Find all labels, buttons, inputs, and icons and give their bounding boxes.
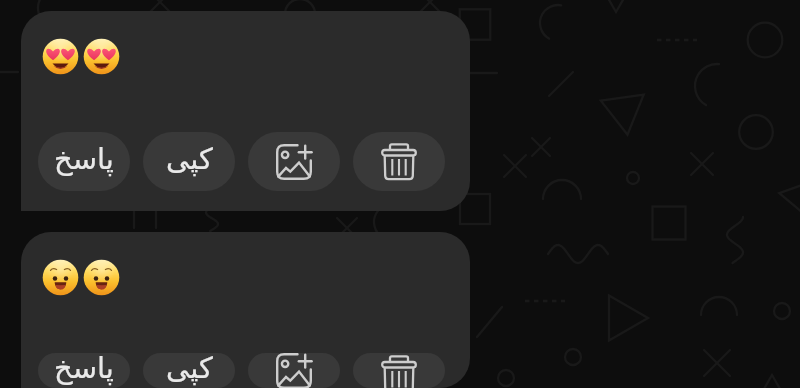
staticText: پاسخ: [54, 353, 114, 385]
button[interactable]: Save image: [248, 353, 340, 388]
button[interactable]: Reply: [21, 232, 470, 388]
staticText: کپی: [166, 353, 213, 385]
button[interactable]: Reply: [38, 353, 130, 388]
button[interactable]: Reply: [21, 11, 470, 211]
button[interactable]: Delete: [353, 132, 445, 191]
button[interactable]: Reply: [38, 132, 130, 191]
staticText: کپی: [166, 142, 213, 176]
button[interactable]: Copy: [143, 132, 235, 191]
button[interactable]: Copy: [143, 353, 235, 388]
button[interactable]: Save image: [248, 132, 340, 191]
staticText: پاسخ: [54, 142, 114, 176]
button[interactable]: Delete: [353, 353, 445, 388]
